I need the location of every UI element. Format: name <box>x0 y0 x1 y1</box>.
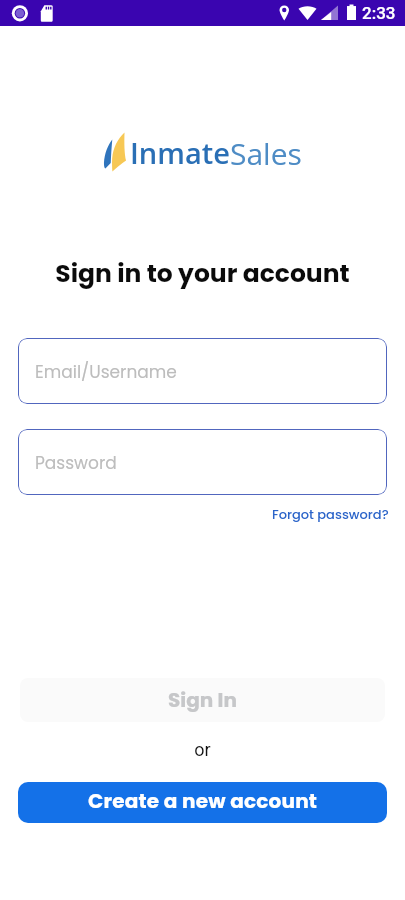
staticText: Forgot password? <box>272 505 389 523</box>
staticText: Sign In <box>168 686 237 714</box>
staticText: 2:33 <box>362 3 396 23</box>
staticText: or <box>0 739 405 760</box>
staticText: Password <box>35 451 117 475</box>
button[interactable]: Password <box>18 429 387 495</box>
staticText: Sign in to your account <box>0 256 405 291</box>
staticText: Sales <box>230 133 302 174</box>
staticText: Inmate <box>130 133 230 172</box>
button[interactable]: Sign In <box>20 678 385 722</box>
button[interactable]: Forgot password? <box>272 505 389 523</box>
button[interactable]: Create a new account <box>18 782 387 823</box>
staticText: Create a new account <box>88 787 318 815</box>
staticText: Email/Username <box>35 360 177 384</box>
button[interactable]: Email/Username <box>18 338 387 404</box>
